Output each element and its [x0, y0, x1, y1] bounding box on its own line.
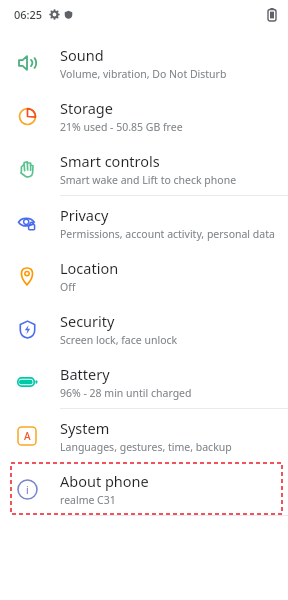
staticText: A — [24, 429, 31, 443]
staticText: Smart controls — [60, 151, 160, 171]
button[interactable]: Storage — [0, 89, 288, 142]
button[interactable]: Location — [0, 249, 288, 302]
staticText: 06:25 — [14, 7, 43, 22]
staticText: Location — [60, 258, 119, 278]
button[interactable]: A — [0, 409, 288, 462]
staticText: Permissions, account activity, personal … — [60, 227, 275, 241]
staticText: Security — [60, 311, 115, 331]
staticText: 21% used - 50.85 GB free — [60, 120, 183, 134]
button[interactable]: Security — [0, 302, 288, 355]
button[interactable]: Privacy — [0, 196, 288, 249]
staticText: i — [26, 483, 29, 497]
staticText: Off — [60, 280, 76, 294]
staticText: realme C31 — [60, 493, 116, 507]
staticText: Sound — [60, 45, 104, 65]
staticText: Languages, gestures, time, backup — [60, 440, 232, 454]
staticText: Storage — [60, 98, 113, 118]
staticText: 96% - 28 min until charged — [60, 386, 192, 400]
staticText: Battery — [60, 364, 110, 384]
staticText: Privacy — [60, 205, 109, 225]
staticText: About phone — [60, 471, 149, 491]
button[interactable]: Battery — [0, 355, 288, 408]
button[interactable]: Smart controls — [0, 142, 288, 195]
staticText: Screen lock, face unlock — [60, 333, 178, 347]
button[interactable]: Sound — [0, 36, 288, 89]
staticText: Smart wake and Lift to check phone — [60, 173, 237, 187]
staticText: Volume, vibration, Do Not Disturb — [60, 67, 227, 81]
staticText: System — [60, 418, 110, 438]
button[interactable]: i — [0, 462, 288, 515]
